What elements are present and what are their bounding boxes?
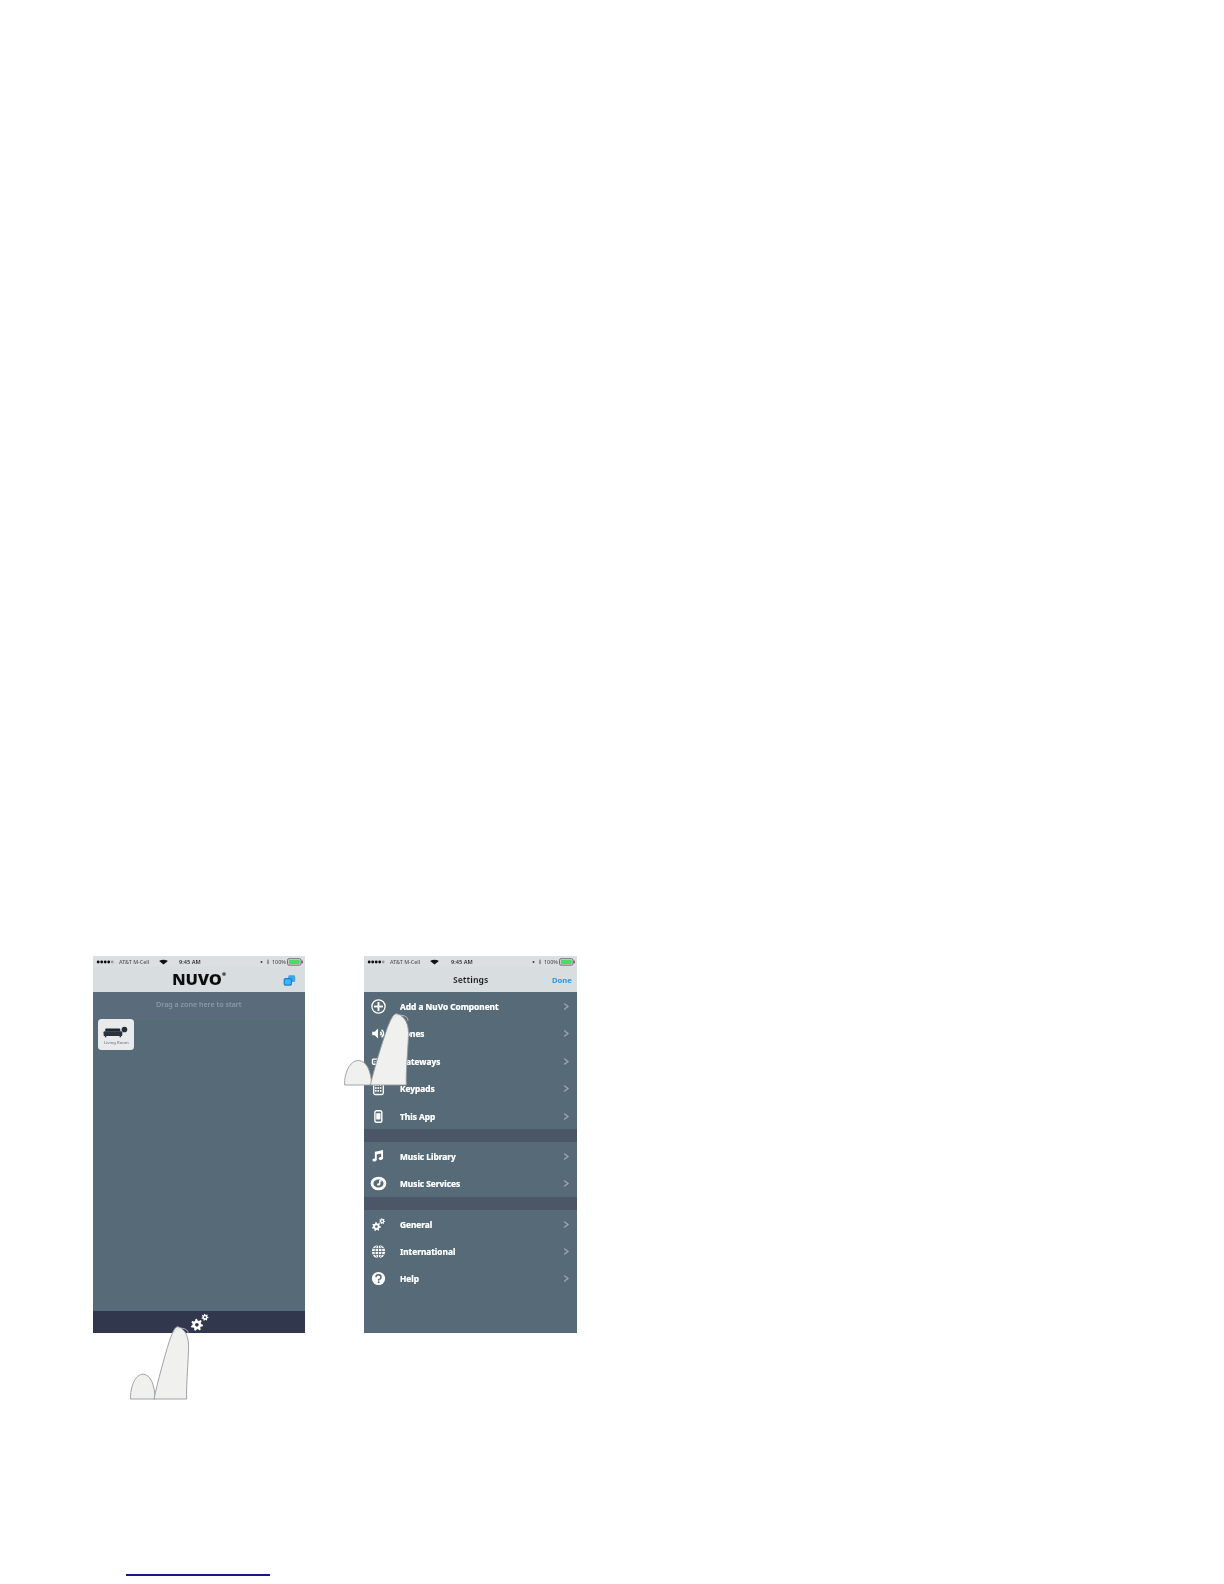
staticText: 100% — [544, 958, 558, 965]
staticText: AT&T M-Cell — [119, 958, 150, 965]
staticText: 100% — [272, 958, 286, 965]
staticText: Music Services — [400, 1178, 461, 1189]
button[interactable]: Living Room — [98, 1019, 134, 1050]
staticText: Keypads — [400, 1083, 435, 1094]
button[interactable]: Zones — [364, 1019, 577, 1047]
staticText: This App — [400, 1111, 436, 1122]
button[interactable]: This App — [364, 1102, 577, 1130]
staticText: Zones — [400, 1028, 425, 1039]
staticText: 9:45 AM — [451, 958, 473, 966]
staticText: International — [400, 1246, 456, 1257]
staticText: Drag a zone here to start — [156, 999, 242, 1009]
staticText: Gateways — [400, 1056, 441, 1067]
staticText: Settings — [453, 974, 489, 986]
staticText: NUVO — [172, 967, 222, 988]
staticText: Music Library — [400, 1151, 456, 1162]
button[interactable]: Done — [552, 975, 572, 985]
staticText: Help — [400, 1273, 420, 1284]
button[interactable]: Music Services — [364, 1169, 577, 1197]
button[interactable]: Help — [364, 1264, 577, 1292]
staticText: AT&T M-Cell — [390, 958, 421, 965]
button[interactable]: Settings — [93, 1311, 305, 1333]
button[interactable]: General — [364, 1210, 577, 1238]
staticText: Add a NuVo Component — [400, 1001, 499, 1012]
staticText: Done — [552, 975, 572, 985]
button[interactable]: International — [364, 1237, 577, 1265]
staticText: Living Room — [104, 1040, 129, 1046]
staticText: 9:45 AM — [179, 958, 201, 966]
staticText: General — [400, 1219, 433, 1230]
button[interactable]: Music Library — [364, 1142, 577, 1170]
button[interactable]: Gateways — [364, 1047, 577, 1075]
button[interactable]: Zones — [280, 971, 298, 989]
button[interactable]: Keypads — [364, 1074, 577, 1102]
button[interactable]: Add a NuVo Component — [364, 992, 577, 1020]
